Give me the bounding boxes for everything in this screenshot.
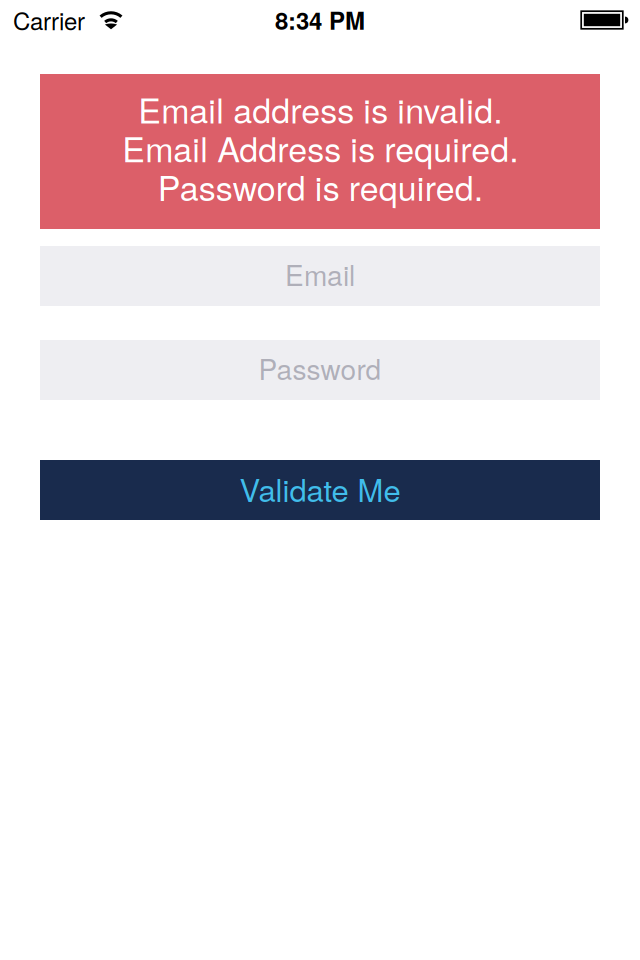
button[interactable]: Email bbox=[40, 246, 600, 306]
staticText: 8:34 PM bbox=[275, 3, 365, 37]
button[interactable]: Validate Me bbox=[40, 460, 600, 520]
staticText: Validate Me bbox=[239, 466, 400, 511]
staticText: Carrier bbox=[13, 3, 85, 37]
staticText: Password bbox=[258, 348, 381, 388]
staticText: Email address is invalid. Email Address … bbox=[122, 84, 518, 211]
staticText: Email bbox=[285, 254, 355, 294]
button[interactable]: Password bbox=[40, 340, 600, 400]
